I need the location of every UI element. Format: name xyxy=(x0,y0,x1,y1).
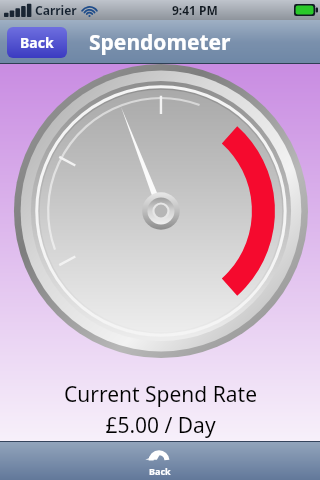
staticText: Current Spend Rate xyxy=(64,380,257,409)
button[interactable]: Back xyxy=(134,443,186,479)
button[interactable]: Back xyxy=(7,27,67,58)
staticText: Carrier xyxy=(35,2,77,18)
staticText: Spendometer xyxy=(89,28,231,57)
staticText: Back xyxy=(20,33,54,52)
staticText: £5.00 / Day xyxy=(105,411,216,440)
staticText: Back xyxy=(149,465,171,477)
staticText: 9:41 PM xyxy=(172,2,218,18)
